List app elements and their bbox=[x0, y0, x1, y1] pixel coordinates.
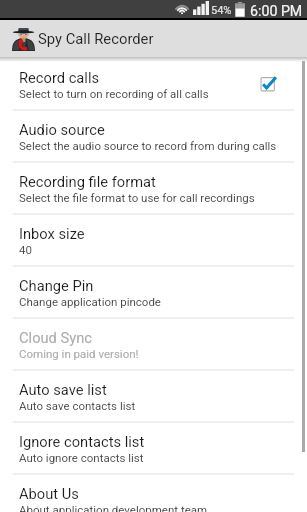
button[interactable]: Recording file format bbox=[0, 163, 307, 213]
staticText: Change application pincode bbox=[19, 295, 161, 308]
staticText: 6:00 PM bbox=[250, 3, 303, 20]
staticText: Inbox size bbox=[19, 225, 85, 242]
staticText: Recording file format bbox=[19, 173, 156, 190]
staticText: Select the audio source to record from d… bbox=[19, 139, 277, 152]
staticText: Select the file format to use for call r… bbox=[19, 191, 255, 204]
staticText: Auto save list bbox=[19, 381, 107, 398]
staticText: Spy Call Recorder bbox=[38, 30, 154, 47]
button[interactable]: About Us bbox=[0, 475, 307, 512]
button[interactable]: Change Pin bbox=[0, 267, 307, 317]
staticText: Auto save contacts list bbox=[19, 399, 136, 412]
staticText: 40 bbox=[19, 243, 32, 256]
button[interactable]: Record calls toggle bbox=[259, 72, 281, 94]
button[interactable]: Audio source bbox=[0, 111, 307, 161]
staticText: Ignore contacts list bbox=[19, 433, 145, 450]
button[interactable]: Ignore contacts list bbox=[0, 423, 307, 473]
staticText: Audio source bbox=[19, 121, 105, 138]
button[interactable]: Spy Call Recorder bbox=[0, 20, 307, 57]
button[interactable]: Record calls bbox=[0, 59, 307, 109]
staticText: Auto ignore contacts list bbox=[19, 451, 144, 464]
staticText: Change Pin bbox=[19, 277, 94, 294]
staticText: Select to turn on recording of all calls bbox=[19, 87, 209, 100]
button[interactable]: Auto save list bbox=[0, 371, 307, 421]
button[interactable]: Cloud Sync bbox=[0, 319, 307, 369]
staticText: Record calls bbox=[19, 69, 100, 86]
staticText: Cloud Sync bbox=[19, 329, 93, 346]
button[interactable]: Inbox size bbox=[0, 215, 307, 265]
staticText: About Us bbox=[19, 485, 79, 502]
staticText: Coming in paid version! bbox=[19, 347, 139, 360]
staticText: About application development team bbox=[19, 503, 208, 512]
staticText: 54% bbox=[211, 4, 232, 17]
